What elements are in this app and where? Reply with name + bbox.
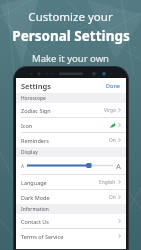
staticText: Zodiac Sign <box>21 107 51 114</box>
staticText: Settings <box>21 81 51 91</box>
staticText: Customize your <box>28 9 113 25</box>
button[interactable]: Terms of Service <box>16 229 126 243</box>
staticText: Done <box>106 82 120 89</box>
button[interactable]: Icon <box>16 118 126 132</box>
staticText: English <box>99 179 116 186</box>
staticText: Reminders <box>21 137 49 144</box>
other: Open Zodiac Sign <box>118 107 121 113</box>
other: Open Dark Mode <box>118 194 121 200</box>
staticText: Make it your own <box>32 52 109 65</box>
staticText: Information <box>21 206 49 213</box>
other: Open Reminders <box>118 137 121 143</box>
button[interactable]: Dark Mode <box>16 190 126 204</box>
staticText: Contact Us <box>21 218 49 225</box>
other: Open Contact Us <box>118 218 121 224</box>
staticText: Language <box>21 179 47 186</box>
other: Open Icon <box>118 122 121 128</box>
other: Open Language <box>118 179 121 185</box>
button[interactable]: A <box>16 157 126 174</box>
button[interactable]: Done <box>105 80 121 91</box>
staticText: Virgo <box>104 107 116 114</box>
staticText: Icon <box>21 122 33 129</box>
button[interactable]: Language <box>16 175 126 189</box>
staticText: A <box>21 163 24 169</box>
other: Open Terms of Service <box>118 233 121 239</box>
button[interactable]: Zodiac Sign <box>16 103 126 117</box>
other: Zodiac icon <box>110 122 116 128</box>
staticText: On <box>109 137 116 144</box>
staticText: Terms of Service <box>21 233 64 240</box>
staticText: Display <box>21 149 38 156</box>
button[interactable]: Contact Us <box>16 214 126 228</box>
staticText: A <box>116 161 121 171</box>
staticText: Horoscope <box>21 95 46 102</box>
staticText: On <box>109 194 116 201</box>
staticText: Personal Settings <box>12 27 130 45</box>
button[interactable]: Reminders <box>16 133 126 147</box>
staticText: Dark Mode <box>21 194 50 201</box>
